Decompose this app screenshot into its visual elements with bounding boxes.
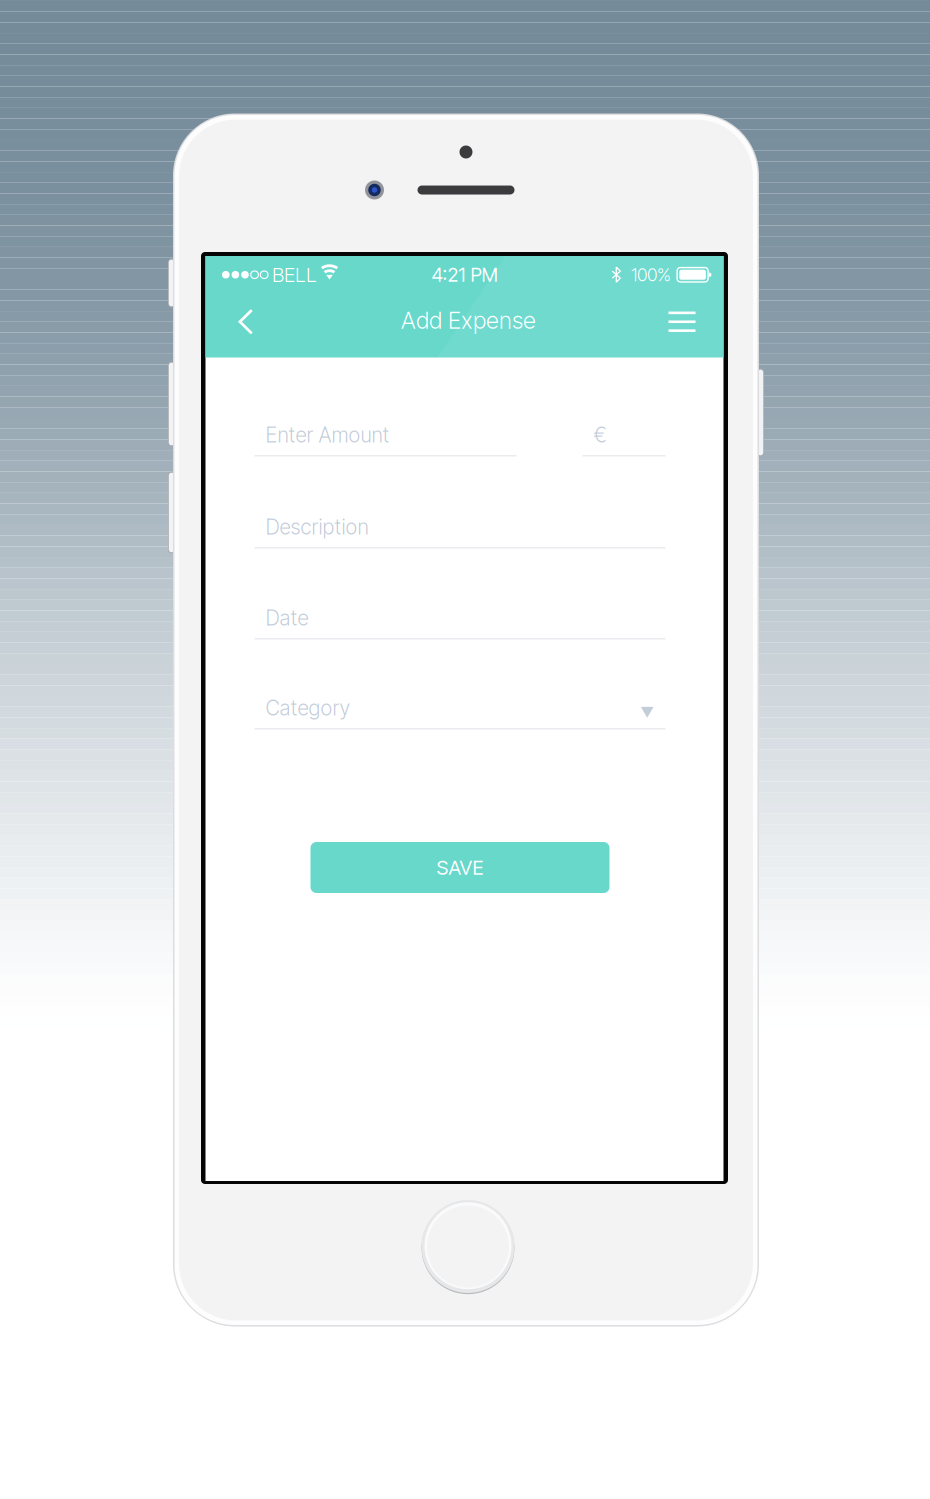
staticText: SAVE	[436, 855, 483, 880]
staticText: Date	[265, 605, 308, 630]
button[interactable]: SAVE	[310, 842, 609, 893]
staticText: Description	[265, 514, 368, 539]
button[interactable]: Description	[254, 521, 665, 548]
button[interactable]: Category	[254, 702, 665, 729]
staticText: BELL	[272, 263, 317, 287]
staticText: 4:21 PM	[431, 263, 497, 286]
button[interactable]: Enter Amount	[254, 429, 516, 456]
button[interactable]: Back	[205, 295, 271, 355]
button[interactable]: Date	[254, 612, 665, 639]
staticText: Enter Amount	[265, 422, 389, 447]
staticText: 100%	[631, 264, 671, 286]
button[interactable]: Menu	[650, 298, 723, 352]
button[interactable]: €	[582, 429, 665, 456]
staticText: €	[593, 422, 606, 447]
staticText: Add Expense	[401, 306, 536, 334]
staticText: Category	[265, 695, 350, 720]
